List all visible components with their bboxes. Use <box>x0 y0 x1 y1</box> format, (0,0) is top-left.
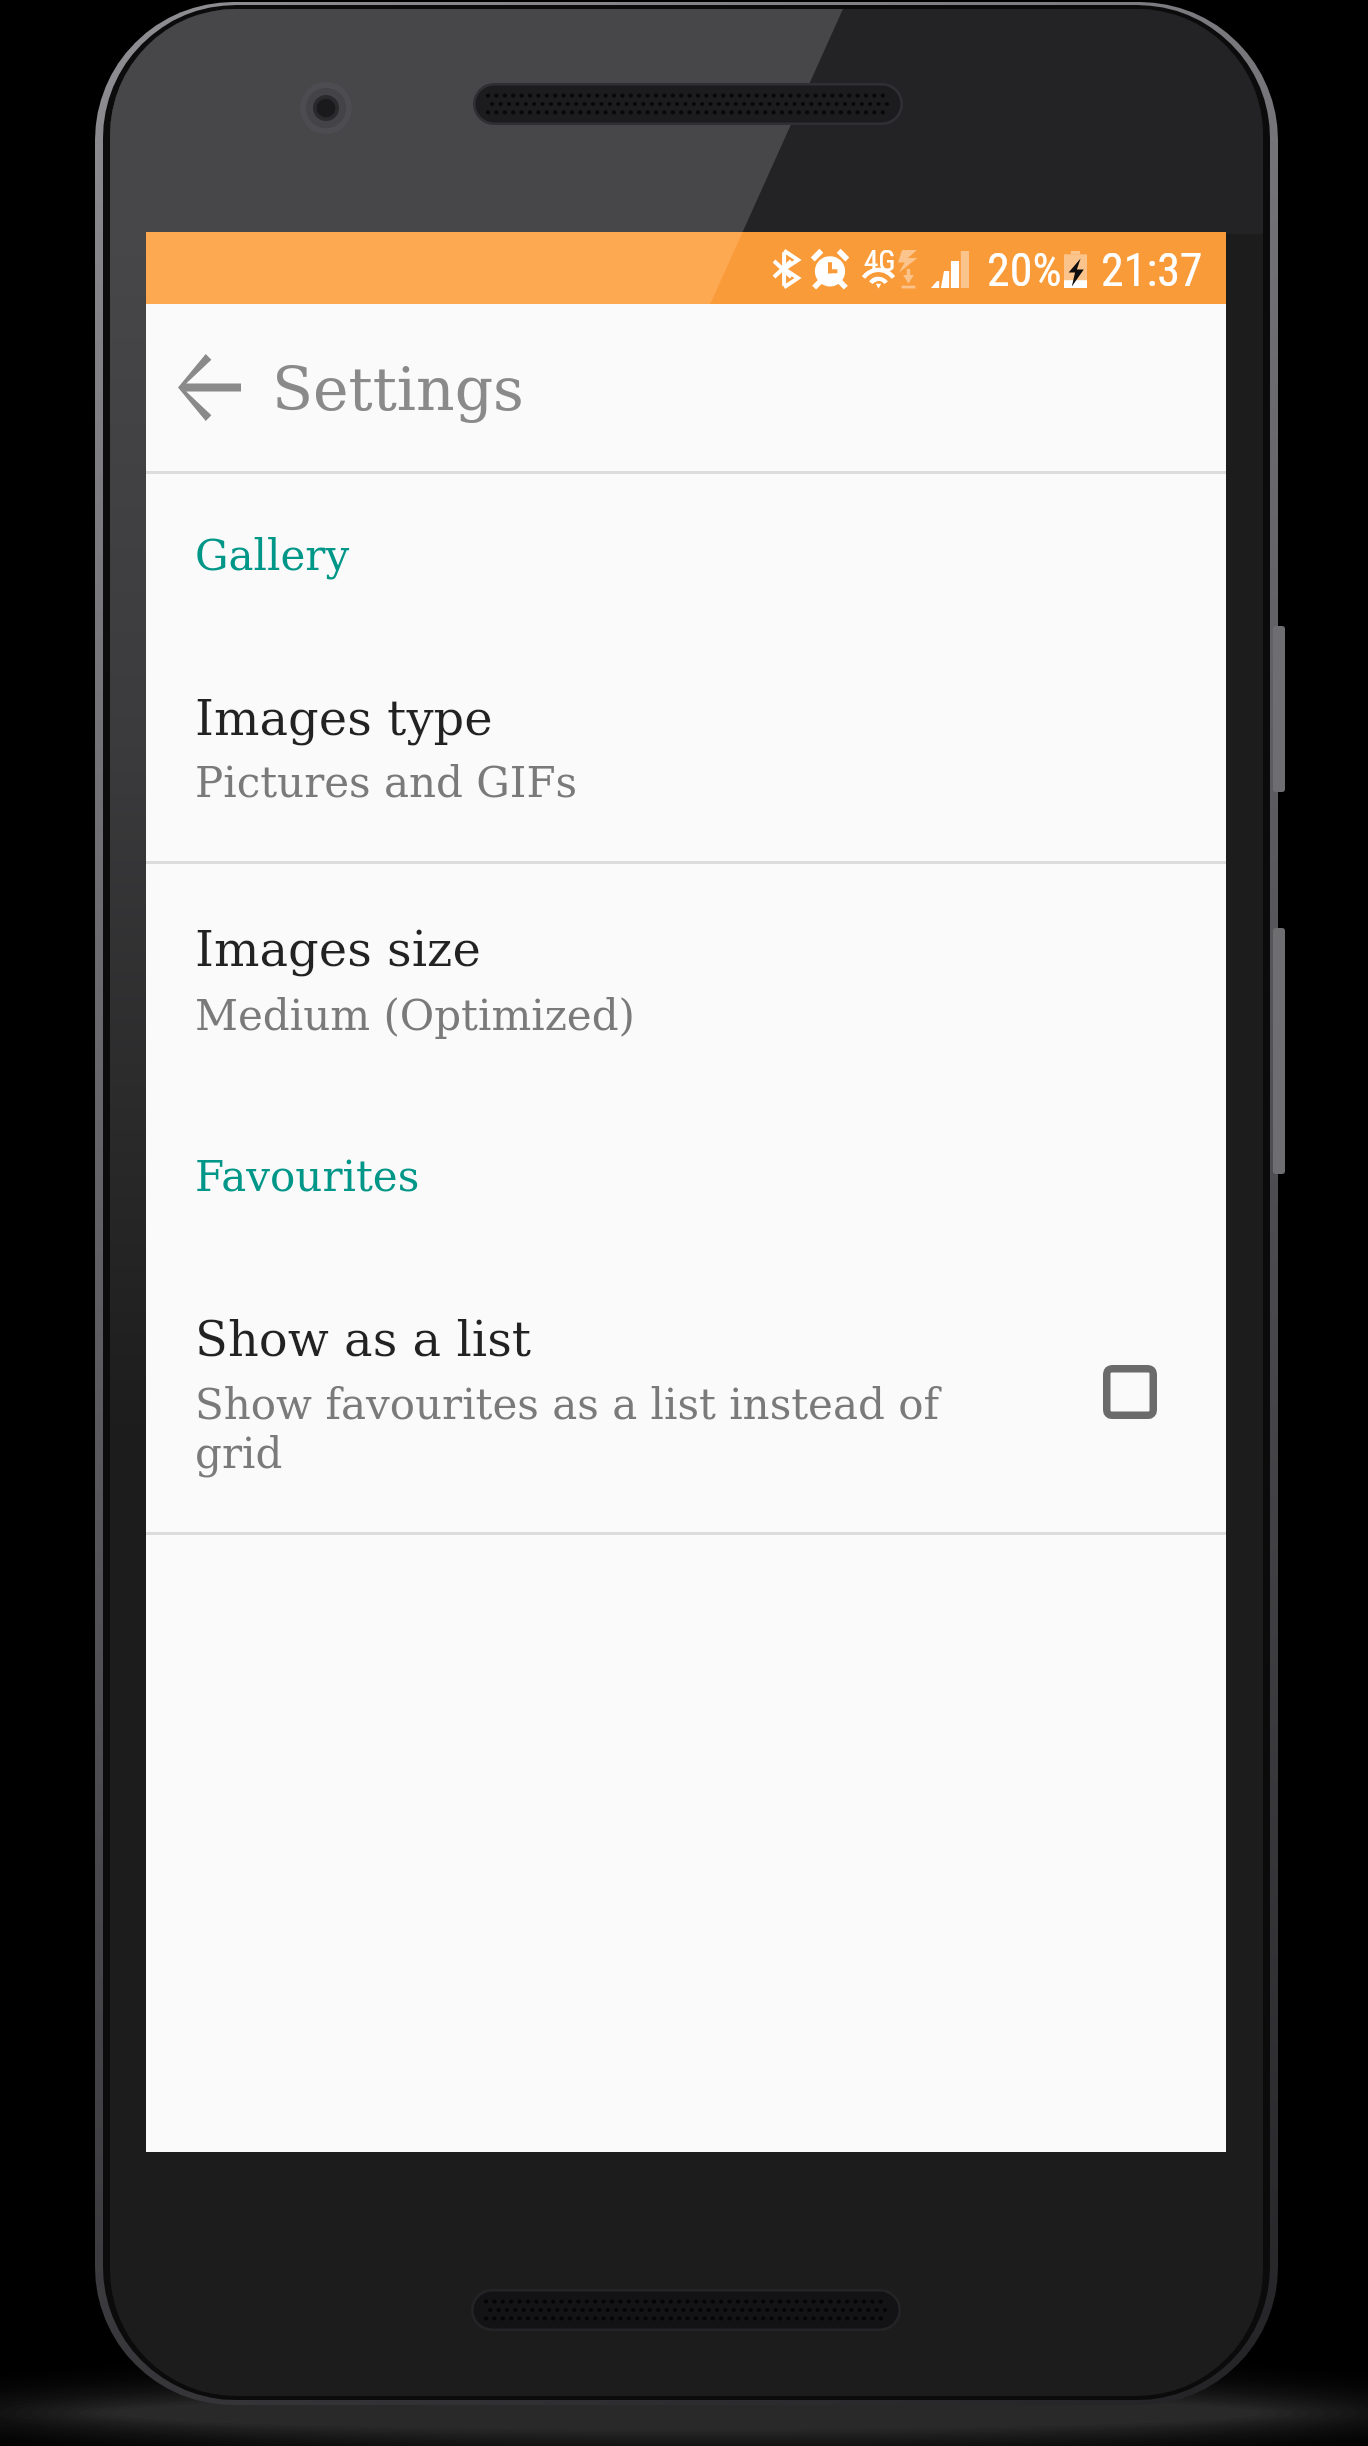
button[interactable]: Navigate up <box>146 304 274 471</box>
staticText: Show as a list <box>195 1311 532 1367</box>
staticText: 21:37 <box>1101 243 1203 297</box>
staticText: Images type <box>195 690 493 746</box>
staticText: Show favourites as a list instead of gri… <box>195 1380 985 1478</box>
staticText: 20% <box>987 243 1062 297</box>
button[interactable]: Show as a list <box>146 1272 1226 1532</box>
staticText: 4G <box>864 244 896 278</box>
staticText: Favourites <box>195 1152 420 1201</box>
button[interactable]: Gallery <box>146 474 1226 861</box>
staticText: Gallery <box>195 531 350 580</box>
staticText: Pictures and GIFs <box>195 758 578 807</box>
staticText: Medium (Optimized) <box>195 991 635 1040</box>
staticText: Settings <box>272 354 524 424</box>
staticText: Images size <box>195 921 481 977</box>
button[interactable]: Images size <box>146 864 1226 1026</box>
